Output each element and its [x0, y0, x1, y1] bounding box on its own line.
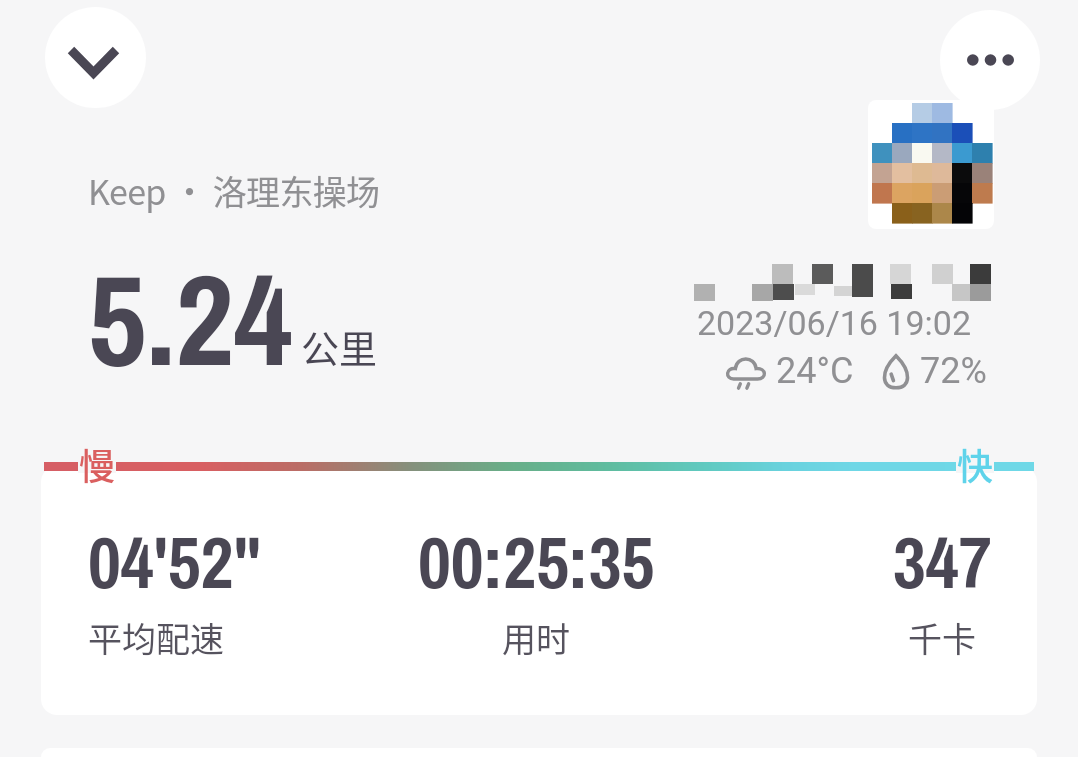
button[interactable]: More options — [940, 10, 1040, 110]
staticText: 公里 — [301, 319, 378, 374]
button[interactable]: 00:25:35 — [386, 513, 686, 662]
staticText: 347 — [893, 513, 992, 610]
staticText: 00:25:35 — [418, 513, 655, 610]
staticText: 用时 — [502, 613, 570, 662]
staticText: 快 — [957, 438, 994, 490]
button[interactable]: Collapse — [45, 7, 146, 108]
staticText: 平均配速 — [88, 613, 224, 662]
staticText: 2023/06/16 19:02 — [697, 303, 972, 343]
staticText: 千卡 — [908, 613, 976, 662]
button[interactable]: 04'52" — [88, 513, 388, 662]
staticText: 72% — [920, 350, 987, 392]
button[interactable]: 347 — [792, 513, 1078, 662]
staticText: Keep · 洛理东操场 — [88, 166, 380, 215]
staticText: 24°C — [776, 350, 854, 392]
staticText: 慢 — [79, 438, 116, 490]
staticText: 04'52" — [88, 513, 262, 610]
staticText: 5.24 — [88, 233, 293, 405]
